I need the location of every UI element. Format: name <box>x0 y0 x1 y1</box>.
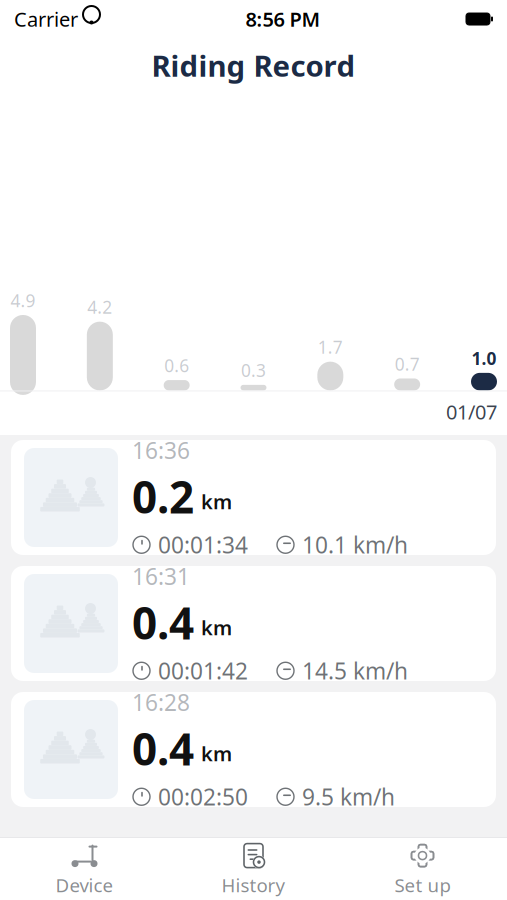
staticText: 0.2 <box>132 467 194 526</box>
staticText: History <box>221 873 285 897</box>
staticText: km <box>201 614 232 641</box>
staticText: 0.4 <box>132 719 194 778</box>
staticText: 01/07 <box>446 398 497 425</box>
staticText: 00:02:50 <box>158 782 248 812</box>
staticText: 1.0 <box>471 347 496 370</box>
button[interactable]: History <box>169 833 338 900</box>
staticText: 14.5 km/h <box>302 656 408 686</box>
staticText: km <box>201 488 232 515</box>
staticText: 16:31 <box>132 561 190 591</box>
staticText: Set up <box>394 873 450 897</box>
button[interactable]: 16:28 <box>11 692 496 807</box>
staticText: 1.7 <box>318 336 343 359</box>
staticText: Carrier <box>14 6 78 32</box>
staticText: 16:36 <box>132 435 190 465</box>
button[interactable]: Device <box>0 833 169 900</box>
staticText: km <box>201 740 232 767</box>
staticText: 0.6 <box>164 354 189 377</box>
staticText: 0.4 <box>132 593 194 652</box>
button[interactable]: 16:31 <box>11 566 496 681</box>
staticText: 16:28 <box>132 687 190 717</box>
staticText: 8:56 PM <box>245 6 320 32</box>
staticText: Device <box>55 873 113 897</box>
button[interactable]: Set up <box>338 833 507 900</box>
staticText: 4.2 <box>87 296 112 319</box>
staticText: Riding Record <box>151 46 355 85</box>
staticText: 00:01:34 <box>158 530 248 560</box>
button[interactable]: 16:36 <box>11 440 496 555</box>
staticText: 10.1 km/h <box>302 530 408 560</box>
staticText: 0.7 <box>395 352 420 375</box>
staticText: 00:01:42 <box>158 656 248 686</box>
staticText: 0.3 <box>241 359 266 382</box>
staticText: 9.5 km/h <box>302 782 395 812</box>
staticText: 4.9 <box>10 289 35 312</box>
